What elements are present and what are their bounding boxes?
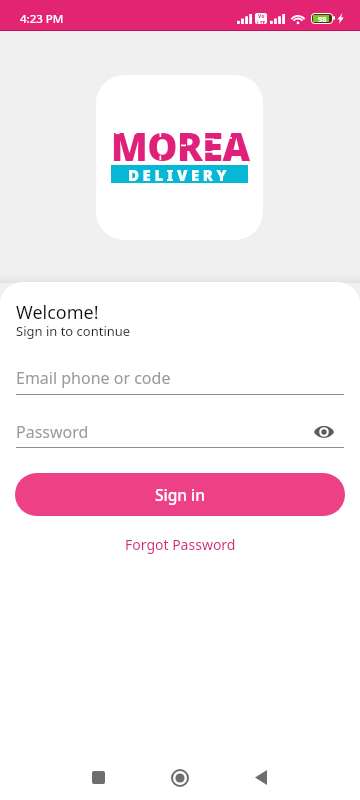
button[interactable]: Sign in [15,473,345,516]
staticText: 4:23 PM [20,11,64,27]
staticText: MOREA [111,120,250,172]
staticText: LTE [257,20,266,24]
button[interactable]: Show password [314,420,344,444]
button[interactable]: Recents [58,753,138,800]
button[interactable]: Back [221,753,301,800]
staticText: 98 [318,14,327,23]
staticText: Sign in [155,484,205,505]
staticText: Email phone or code [16,367,171,389]
button[interactable]: Home [140,753,220,800]
staticText: Welcome! [16,300,99,325]
button[interactable]: Email phone or code [16,367,344,395]
button[interactable]: Password [16,420,344,448]
staticText: Sign in to continue [16,322,131,340]
staticText: Password [16,421,314,443]
staticText: Forgot Password [125,535,236,554]
staticText: Vo [258,13,265,20]
button[interactable]: Forgot Password [117,531,244,558]
staticText: DELIVERY [128,165,231,183]
